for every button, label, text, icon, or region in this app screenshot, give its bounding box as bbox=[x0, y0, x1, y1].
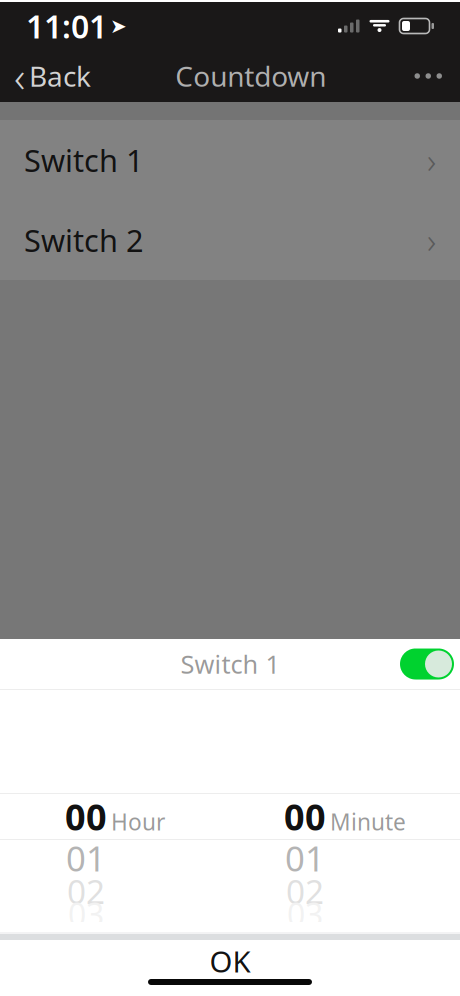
staticText: 00 bbox=[65, 793, 107, 840]
button[interactable]: More options bbox=[396, 50, 460, 102]
staticText: OK bbox=[209, 941, 250, 980]
button[interactable]: Switch 1 bbox=[0, 120, 460, 200]
staticText: 00 bbox=[284, 793, 326, 840]
staticText: › bbox=[427, 217, 436, 263]
staticText: Switch 1 bbox=[180, 647, 279, 681]
button[interactable]: Switch 2 bbox=[0, 200, 460, 280]
staticText: Minute bbox=[330, 807, 406, 837]
staticText: Back bbox=[29, 57, 91, 95]
staticText: ‹ bbox=[14, 48, 25, 104]
staticText: ➤ bbox=[110, 15, 127, 37]
button[interactable]: Switch 1, on bbox=[394, 639, 460, 689]
staticText: 03 bbox=[68, 893, 104, 935]
button[interactable]: ‹ bbox=[0, 50, 105, 102]
staticText: Countdown bbox=[175, 57, 326, 95]
staticText: ◗ bbox=[379, 25, 380, 27]
staticText: 03 bbox=[287, 893, 323, 935]
staticText: › bbox=[427, 137, 436, 183]
staticText: 02 bbox=[67, 869, 105, 913]
staticText: 02 bbox=[286, 869, 324, 913]
staticText: 01 bbox=[285, 835, 325, 881]
staticText: Switch 2 bbox=[24, 220, 144, 260]
staticText: Hour bbox=[111, 807, 165, 837]
staticText: Switch 1 bbox=[24, 140, 144, 180]
button[interactable]: OK bbox=[0, 943, 460, 979]
staticText: 01 bbox=[66, 835, 106, 881]
staticText: 11:01 bbox=[26, 5, 107, 47]
